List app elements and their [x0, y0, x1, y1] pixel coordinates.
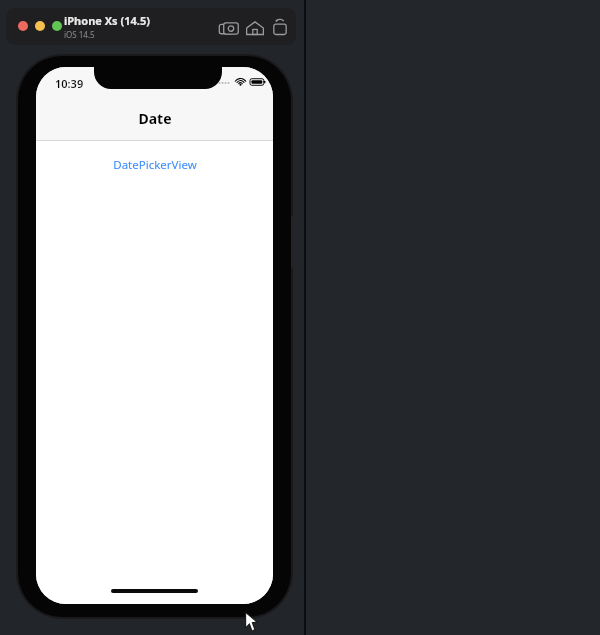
- staticText: iOS 14.5: [64, 29, 95, 40]
- button[interactable]: Screenshot: [218, 19, 240, 37]
- button[interactable]: Minimize: [35, 21, 45, 31]
- button[interactable]: Rotate: [269, 19, 291, 37]
- button[interactable]: Close: [18, 21, 28, 31]
- staticText: DatePickerView: [113, 157, 197, 173]
- button[interactable]: Maximize: [52, 21, 62, 31]
- staticText: iPhone Xs (14.5): [64, 13, 150, 28]
- staticText: 10:39: [55, 76, 84, 91]
- button[interactable]: Home: [244, 19, 266, 37]
- button[interactable]: DatePickerView: [36, 148, 273, 182]
- staticText: Date: [138, 109, 172, 128]
